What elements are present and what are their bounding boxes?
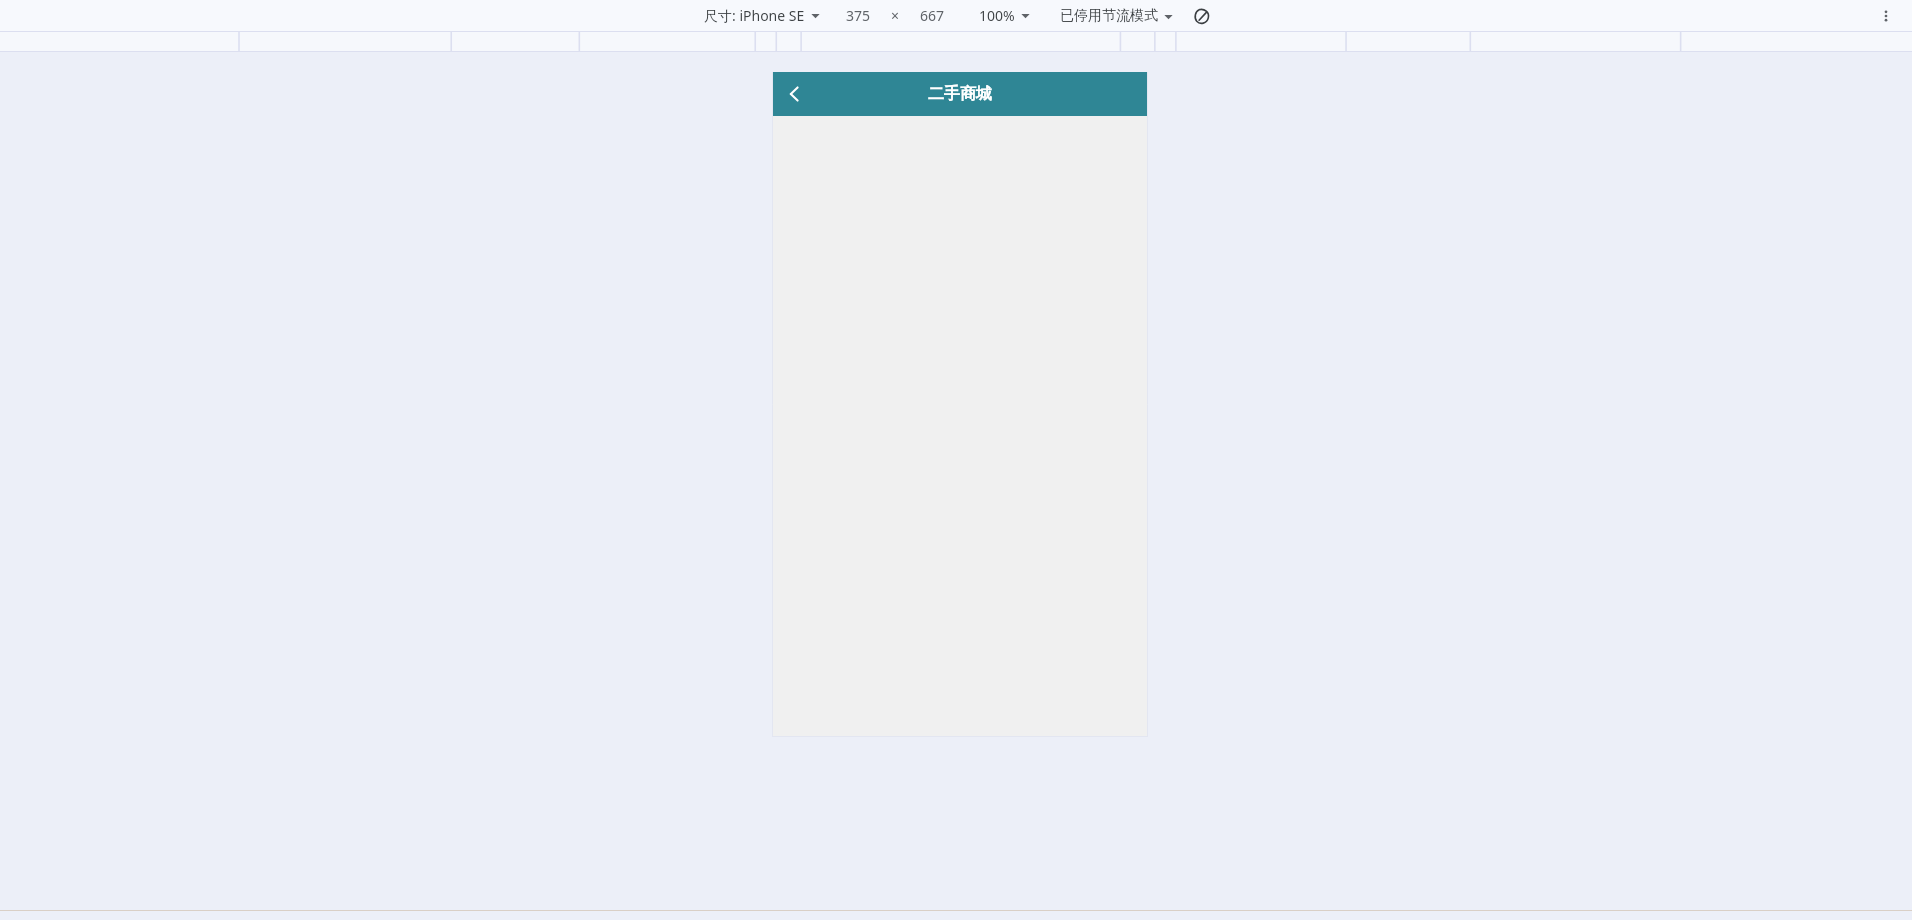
button[interactable]: 尺寸: iPhone SE [700, 3, 824, 28]
button[interactable]: 已停用节流模式 [1056, 4, 1177, 28]
staticText: 375 [846, 6, 871, 25]
staticText: 100% [979, 6, 1015, 25]
staticText: 已停用节流模式 [1060, 7, 1158, 25]
button[interactable]: 100% [975, 3, 1034, 28]
staticText: 667 [920, 6, 945, 25]
staticText: 尺寸: iPhone SE [704, 6, 805, 25]
button[interactable]: 667 [916, 3, 949, 28]
button[interactable]: More options [1874, 4, 1898, 28]
staticText: × [891, 6, 900, 25]
button[interactable]: Back [772, 72, 816, 116]
button[interactable]: 375 [842, 3, 875, 28]
button[interactable]: Rotate [1191, 5, 1213, 27]
staticText: 二手商城 [772, 84, 1148, 104]
